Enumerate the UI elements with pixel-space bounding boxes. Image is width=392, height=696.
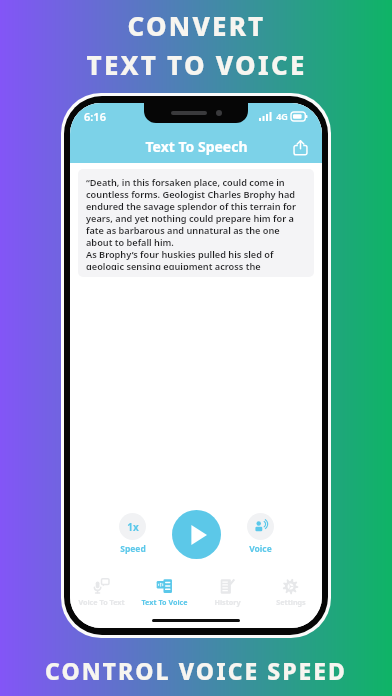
button[interactable]: Play xyxy=(172,510,221,559)
staticText: Settings xyxy=(276,597,306,607)
staticText: 6:16 xyxy=(84,109,106,124)
staticText: TEXT TO VOICE xyxy=(86,47,307,82)
staticText: “Death, in this forsaken place, could co… xyxy=(86,176,306,270)
button[interactable]: Text To Voice xyxy=(133,576,196,609)
staticText: Text To Voice xyxy=(141,597,188,607)
staticText: 1x xyxy=(127,520,139,534)
button[interactable]: Share xyxy=(284,131,316,163)
staticText: 4G xyxy=(276,110,288,122)
button[interactable]: Voice To Text xyxy=(70,576,133,609)
staticText: CONTROL VOICE SPEED xyxy=(45,655,347,686)
staticText: Speed xyxy=(120,543,146,555)
staticText: Text To Speech xyxy=(145,137,248,156)
button[interactable]: 1x xyxy=(115,509,150,559)
button[interactable]: “Death, in this forsaken place, could co… xyxy=(78,169,314,277)
staticText: History xyxy=(214,597,241,607)
staticText: Voice xyxy=(249,543,272,555)
staticText: CONVERT xyxy=(127,8,266,43)
button[interactable]: Settings xyxy=(259,576,322,609)
button[interactable]: Voice xyxy=(243,509,278,559)
button[interactable]: History xyxy=(196,576,259,609)
staticText: Voice To Text xyxy=(78,597,125,607)
